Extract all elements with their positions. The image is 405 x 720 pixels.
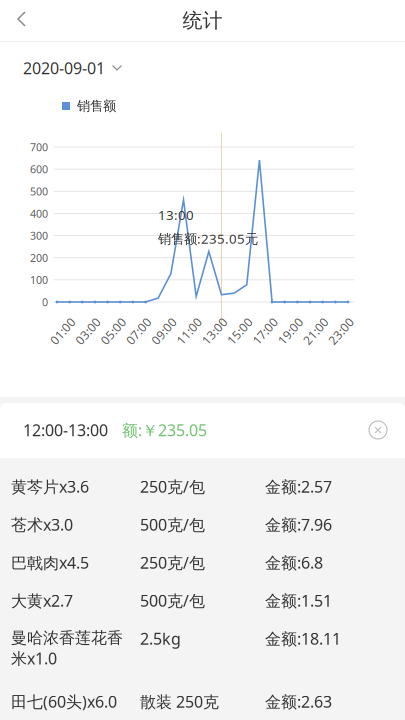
- staticText: 曼哈浓香莲花香 米x1.0: [11, 628, 123, 669]
- button[interactable]: Back: [0, 0, 43, 41]
- staticText: 01:00: [47, 323, 78, 339]
- staticText: 金额:6.8: [265, 552, 323, 573]
- staticText: 大黄x2.7: [11, 590, 73, 611]
- staticText: 销售额:235.05元: [158, 230, 258, 247]
- staticText: 金额:2.63: [265, 691, 332, 712]
- staticText: 黄芩片x3.6: [11, 476, 89, 497]
- staticText: 金额:7.96: [265, 514, 332, 535]
- staticText: 13:00: [158, 206, 194, 224]
- staticText: 07:00: [123, 323, 154, 339]
- staticText: 金额:18.11: [265, 628, 341, 649]
- staticText: 600: [30, 162, 48, 176]
- staticText: 03:00: [72, 323, 103, 339]
- staticText: 0: [42, 295, 48, 309]
- staticText: 额:￥235.05: [122, 419, 207, 441]
- staticText: 700: [30, 140, 48, 154]
- staticText: 散装 250克: [140, 691, 219, 712]
- staticText: 23:00: [325, 323, 356, 339]
- button[interactable]: Close: [369, 421, 387, 439]
- staticText: 500: [30, 184, 48, 198]
- staticText: 统计: [182, 8, 222, 33]
- staticText: 苍术x3.0: [11, 514, 73, 535]
- staticText: 300: [30, 229, 48, 243]
- staticText: 05:00: [98, 323, 129, 339]
- staticText: 巴戟肉x4.5: [11, 552, 89, 573]
- staticText: 500克/包: [140, 590, 205, 611]
- staticText: 15:00: [224, 323, 255, 339]
- button[interactable]: 2020-09-01: [0, 51, 132, 85]
- staticText: 100: [30, 273, 48, 287]
- staticText: 500克/包: [140, 514, 205, 535]
- staticText: 09:00: [148, 323, 179, 339]
- staticText: 13:00: [199, 323, 230, 339]
- staticText: 11:00: [174, 323, 205, 339]
- staticText: 12:00-13:00: [23, 419, 108, 441]
- staticText: 2.5kg: [140, 628, 181, 649]
- staticText: 400: [30, 206, 48, 221]
- staticText: 21:00: [300, 323, 331, 339]
- staticText: 17:00: [250, 323, 281, 339]
- staticText: 250克/包: [140, 476, 205, 497]
- staticText: 销售额: [77, 98, 116, 114]
- staticText: 19:00: [275, 323, 306, 339]
- staticText: 金额:2.57: [265, 476, 332, 497]
- staticText: 2020-09-01: [23, 57, 105, 79]
- staticText: 200: [30, 251, 48, 265]
- staticText: 金额:1.51: [265, 590, 332, 611]
- staticText: 田七(60头)x6.0: [11, 691, 117, 712]
- staticText: 250克/包: [140, 552, 205, 573]
